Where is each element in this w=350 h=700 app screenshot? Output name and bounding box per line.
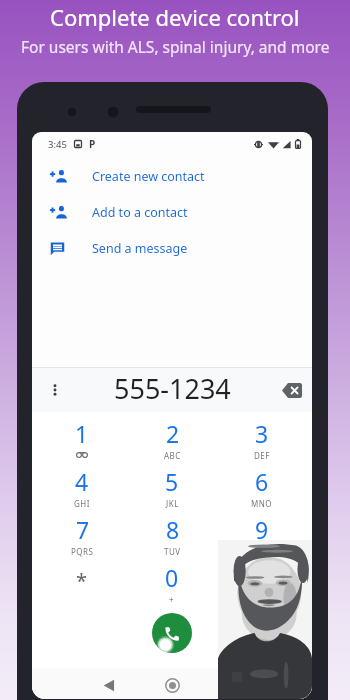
button[interactable]: 5 bbox=[127, 464, 217, 512]
staticText: MNO bbox=[251, 498, 273, 509]
button[interactable]: 8 bbox=[127, 512, 217, 560]
staticText: 5 bbox=[165, 466, 179, 497]
staticText: GHI bbox=[74, 498, 90, 509]
staticText: + bbox=[169, 594, 175, 605]
button[interactable]: Back bbox=[98, 674, 120, 696]
staticText: 8 bbox=[166, 514, 180, 545]
button[interactable]: 0 bbox=[127, 560, 217, 609]
staticText: P bbox=[89, 137, 96, 151]
staticText: ABC bbox=[164, 450, 181, 461]
button[interactable]: 9 bbox=[217, 512, 307, 560]
staticText: PQRS bbox=[71, 546, 94, 557]
staticText: 555-1234 bbox=[114, 370, 231, 407]
button[interactable]: Add to a contact bbox=[32, 194, 312, 230]
staticText: WXYZ bbox=[250, 546, 274, 557]
staticText: # bbox=[256, 562, 269, 589]
staticText: 3 bbox=[255, 418, 269, 449]
staticText: Complete device control bbox=[50, 2, 300, 32]
button[interactable]: Home bbox=[161, 674, 183, 696]
button[interactable]: More options bbox=[44, 379, 66, 401]
staticText: 7 bbox=[76, 514, 90, 545]
button[interactable]: 1 bbox=[37, 416, 127, 464]
staticText: Add to a contact bbox=[92, 204, 188, 221]
staticText: 2 bbox=[166, 418, 180, 449]
staticText: For users with ALS, spinal injury, and m… bbox=[21, 36, 330, 57]
button[interactable]: Recents bbox=[226, 666, 248, 688]
staticText: Create new contact bbox=[92, 168, 205, 185]
button[interactable]: 6 bbox=[217, 464, 307, 512]
button[interactable]: 7 bbox=[37, 512, 127, 560]
staticText: 6 bbox=[255, 466, 269, 497]
button[interactable]: 3 bbox=[217, 416, 307, 464]
button[interactable]: Backspace bbox=[280, 378, 304, 402]
staticText: TUV bbox=[164, 546, 181, 557]
staticText: 4 bbox=[75, 466, 89, 497]
button[interactable]: 4 bbox=[37, 464, 127, 512]
staticText: 3:45 bbox=[48, 138, 67, 151]
button[interactable]: * bbox=[37, 560, 127, 609]
button[interactable]: Call bbox=[152, 613, 192, 653]
staticText: 0 bbox=[165, 562, 179, 593]
staticText: 1 bbox=[75, 418, 89, 449]
button[interactable]: Create new contact bbox=[32, 158, 312, 194]
staticText: Send a message bbox=[92, 240, 188, 257]
button[interactable]: Send a message bbox=[32, 230, 312, 266]
staticText: * bbox=[76, 567, 88, 594]
button[interactable]: 2 bbox=[127, 416, 217, 464]
button[interactable]: # bbox=[217, 560, 307, 609]
staticText: DEF bbox=[254, 450, 270, 461]
staticText: JKL bbox=[166, 498, 179, 509]
staticText: 9 bbox=[255, 514, 269, 545]
